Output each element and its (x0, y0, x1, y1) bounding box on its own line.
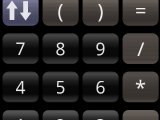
button[interactable]: 3 (83, 110, 119, 120)
staticText: 6 (96, 75, 106, 98)
button[interactable]: / (123, 33, 159, 64)
staticText: * (135, 74, 146, 100)
button[interactable]: - (123, 110, 159, 120)
staticText: 2 (56, 114, 66, 120)
button[interactable]: 9 (83, 33, 119, 64)
staticText: - (138, 112, 144, 120)
button[interactable]: = (123, 0, 159, 26)
staticText: 7 (16, 37, 26, 60)
button[interactable]: 7 (3, 33, 39, 64)
button[interactable]: 6 (83, 72, 119, 102)
button[interactable]: 5 (43, 72, 79, 102)
staticText: 9 (96, 37, 106, 60)
button[interactable]: Swap (3, 0, 39, 26)
staticText: 3 (96, 114, 106, 120)
button[interactable]: 2 (43, 110, 79, 120)
staticText: 8 (56, 37, 66, 60)
button[interactable]: * (123, 72, 159, 102)
button[interactable]: 1 (3, 110, 39, 120)
staticText: 5 (56, 75, 66, 98)
staticText: ) (98, 0, 104, 24)
staticText: 1 (16, 114, 26, 120)
staticText: 4 (16, 75, 26, 98)
staticText: / (137, 35, 144, 62)
button[interactable]: 4 (3, 72, 39, 102)
button[interactable]: ) (83, 0, 119, 26)
button[interactable]: 8 (43, 33, 79, 64)
staticText: ( (58, 0, 64, 24)
staticText: = (135, 0, 146, 24)
button[interactable]: ( (43, 0, 79, 26)
